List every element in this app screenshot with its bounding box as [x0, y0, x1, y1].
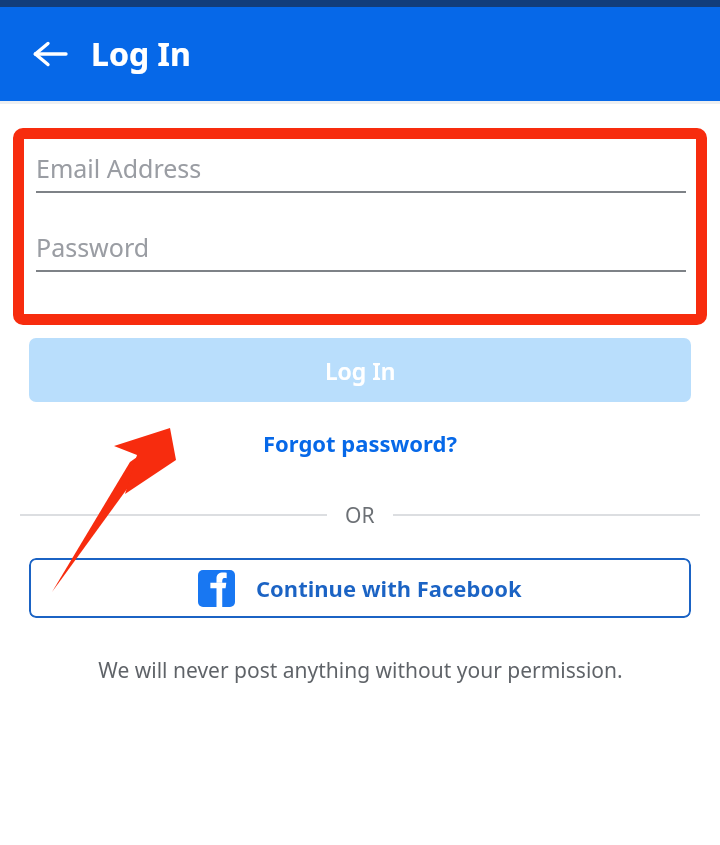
button[interactable]: Log In — [29, 338, 691, 402]
button[interactable]: Email Address — [36, 145, 686, 191]
button[interactable]: Forgot password? — [253, 422, 467, 464]
staticText: Email Address — [36, 151, 202, 185]
button[interactable]: Password — [36, 224, 686, 270]
button[interactable]: Back — [18, 22, 82, 86]
staticText: We will never post anything without your… — [98, 656, 623, 685]
staticText: Continue with Facebook — [256, 573, 522, 603]
staticText: Log In — [325, 355, 396, 386]
staticText: Password — [36, 230, 150, 264]
staticText: Forgot password? — [263, 428, 457, 458]
staticText: Log In — [91, 32, 191, 76]
button[interactable]: Continue with Facebook — [29, 558, 691, 618]
staticText: OR — [345, 501, 375, 530]
